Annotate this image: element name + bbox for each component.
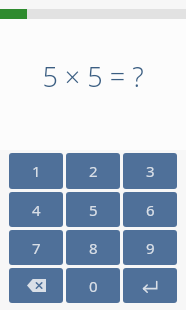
button[interactable]: 4: [9, 192, 63, 227]
staticText: 5: [89, 200, 98, 220]
staticText: 4: [32, 200, 41, 220]
button[interactable]: 5: [66, 192, 120, 227]
staticText: 9: [146, 238, 155, 258]
staticText: 6: [146, 200, 155, 220]
button[interactable]: 1: [9, 153, 63, 189]
button[interactable]: 7: [9, 230, 63, 265]
button[interactable]: 2: [66, 153, 120, 189]
button[interactable]: 8: [66, 230, 120, 265]
button[interactable]: 3: [123, 153, 177, 189]
button[interactable]: Backspace: [9, 268, 63, 303]
staticText: 5 × 5 = ?: [42, 58, 144, 95]
staticText: 3: [146, 161, 155, 181]
staticText: 8: [89, 238, 98, 258]
button[interactable]: 6: [123, 192, 177, 227]
button[interactable]: Enter: [123, 268, 177, 303]
staticText: 1: [32, 161, 41, 181]
button[interactable]: 0: [66, 268, 120, 303]
button[interactable]: 9: [123, 230, 177, 265]
staticText: 0: [89, 276, 98, 296]
staticText: 2: [89, 161, 98, 181]
staticText: 7: [32, 238, 41, 258]
